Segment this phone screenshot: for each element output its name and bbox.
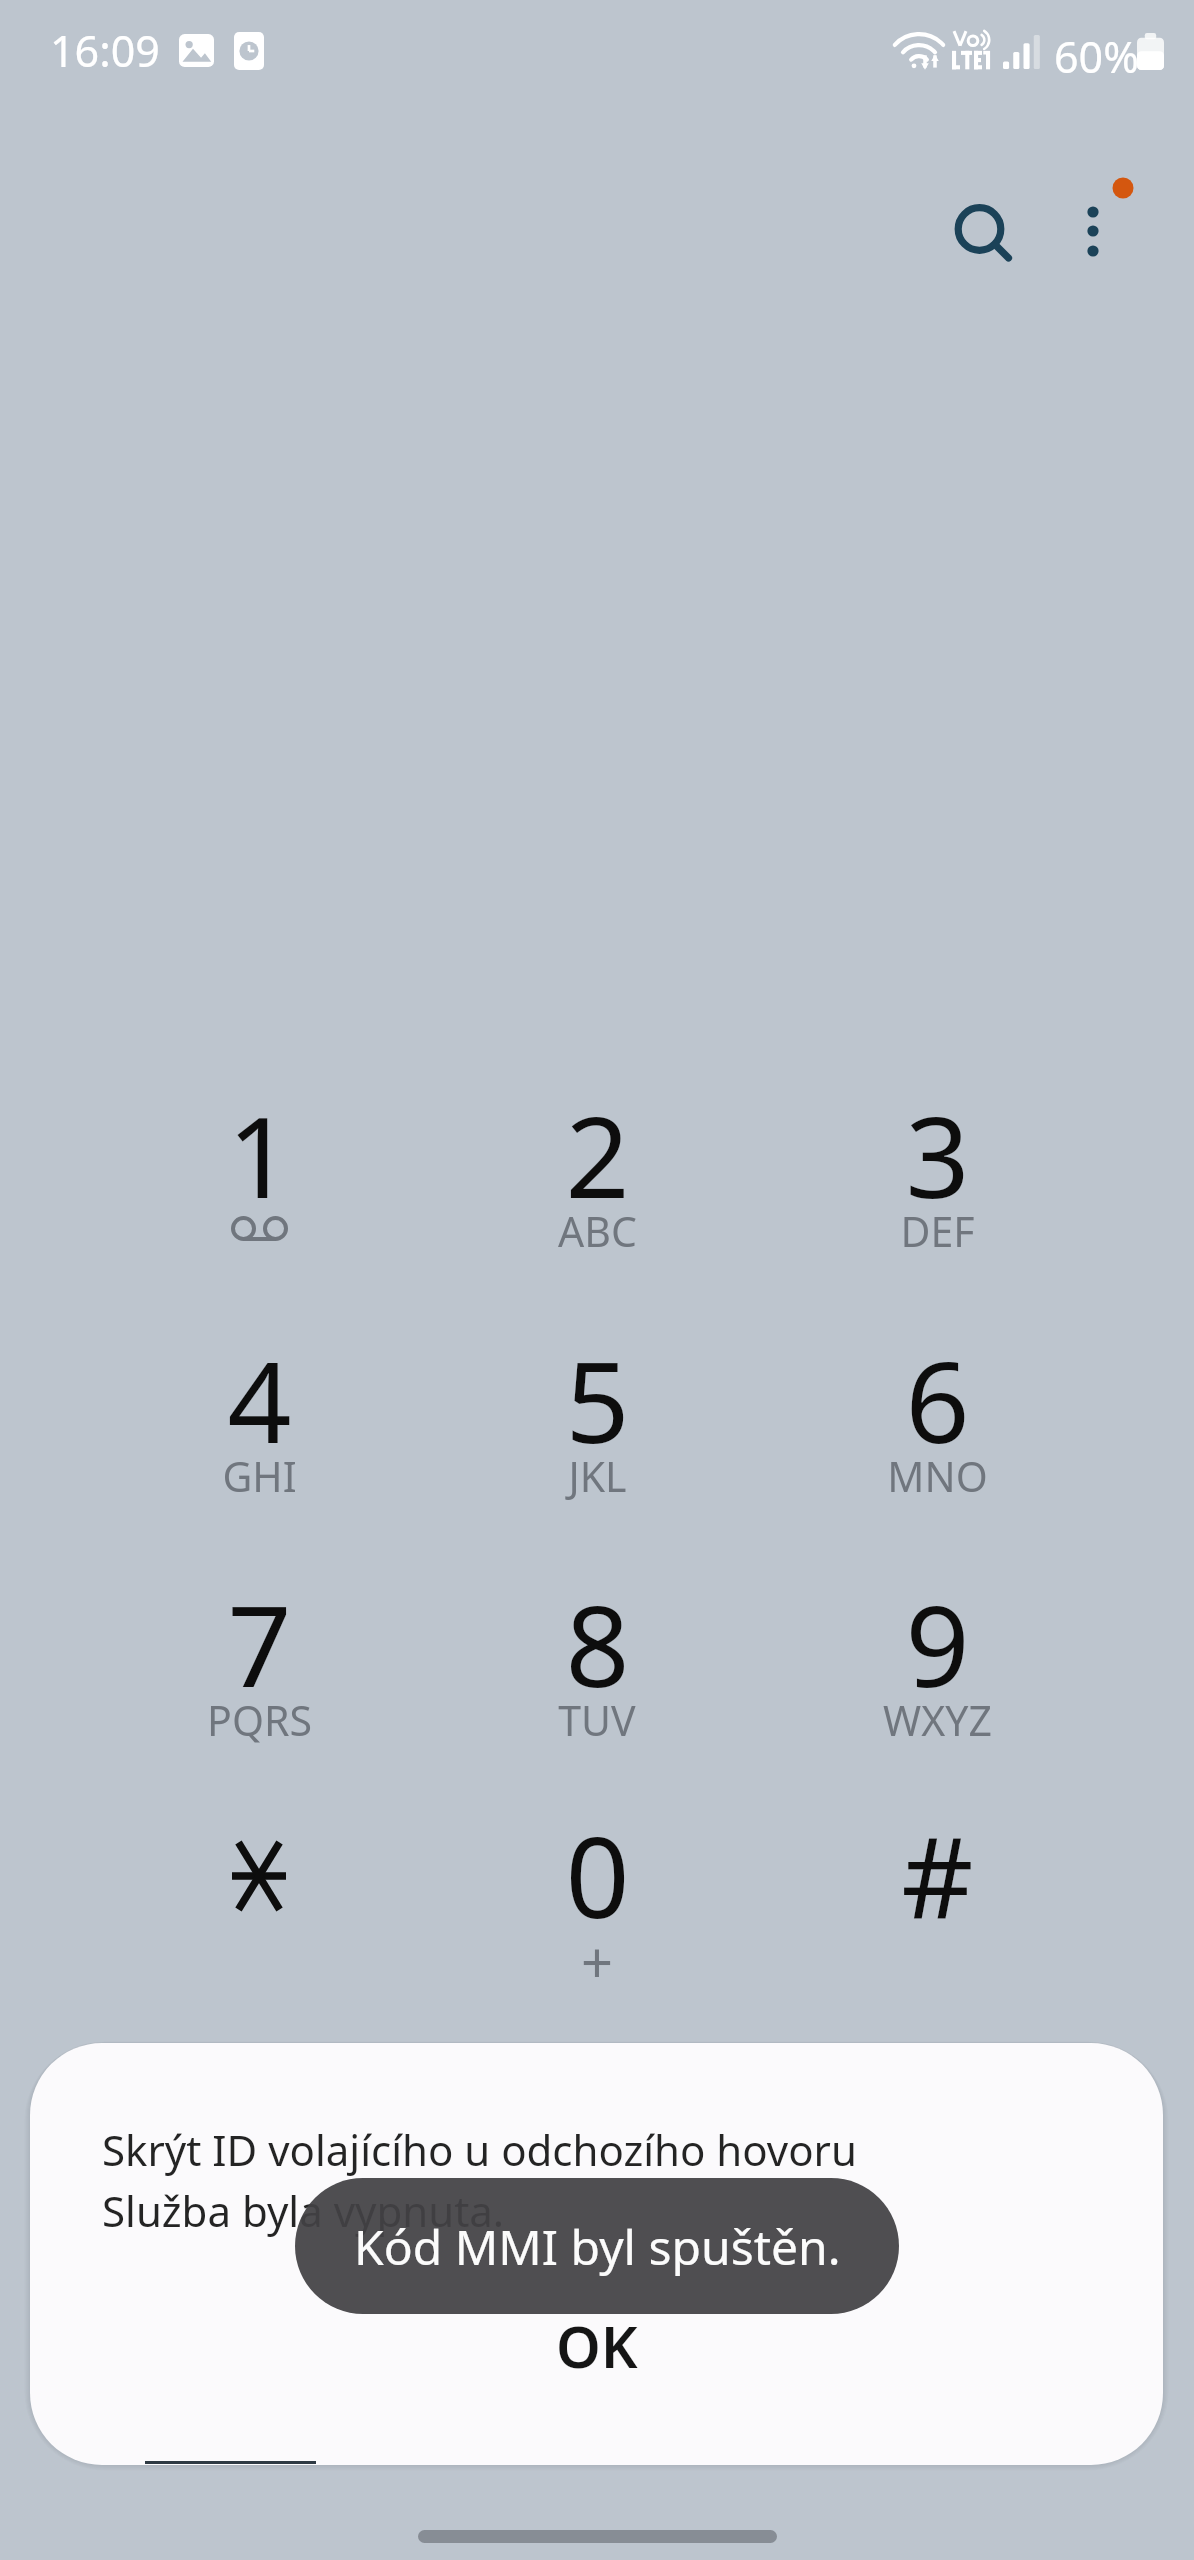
staticText: 2	[565, 1078, 630, 1231]
staticText: MNO	[887, 1448, 988, 1504]
button[interactable]: 1	[94, 1068, 424, 1302]
staticText: 9	[905, 1567, 970, 1720]
button[interactable]: More options	[1031, 168, 1155, 292]
staticText: 60%	[1054, 27, 1139, 86]
staticText: Služba byla vypnuta.	[102, 2182, 505, 2239]
staticText: PQRS	[207, 1692, 312, 1748]
button[interactable]: 4	[94, 1313, 424, 1547]
button[interactable]	[94, 1788, 424, 2022]
button[interactable]: 7	[94, 1557, 424, 1791]
staticText: OK	[556, 2307, 638, 2385]
staticText: +	[581, 1923, 614, 1999]
button[interactable]: OK	[437, 2291, 757, 2401]
staticText: Skrýt ID volajícího u odchozího hovoru	[102, 2121, 857, 2178]
button[interactable]: Search	[916, 168, 1040, 292]
staticText: 16:09	[50, 21, 160, 80]
staticText: JKL	[568, 1448, 627, 1504]
button[interactable]: 9	[772, 1557, 1102, 1791]
button[interactable]: 3	[772, 1068, 1102, 1302]
staticText: 6	[905, 1323, 970, 1476]
button[interactable]: 0	[432, 1788, 762, 2022]
button[interactable]: #	[772, 1788, 1102, 2022]
button[interactable]: 5	[432, 1313, 762, 1547]
staticText: 0	[565, 1798, 630, 1951]
staticText: GHI	[222, 1448, 297, 1504]
staticText: Kód MMI byl spuštěn.	[354, 2214, 841, 2279]
staticText: 8	[565, 1567, 630, 1720]
staticText: 3	[905, 1078, 970, 1231]
staticText: 7	[227, 1567, 292, 1720]
staticText: WXYZ	[883, 1692, 992, 1748]
staticText: 4	[227, 1323, 292, 1476]
staticText: 5	[565, 1323, 630, 1476]
staticText: ABC	[558, 1203, 637, 1259]
button[interactable]: 8	[432, 1557, 762, 1791]
staticText: #	[901, 1798, 974, 1951]
staticText: 1	[227, 1078, 292, 1231]
staticText: TUV	[558, 1692, 636, 1748]
button[interactable]: 6	[772, 1313, 1102, 1547]
staticText: DEF	[900, 1203, 975, 1259]
button[interactable]: 2	[432, 1068, 762, 1302]
